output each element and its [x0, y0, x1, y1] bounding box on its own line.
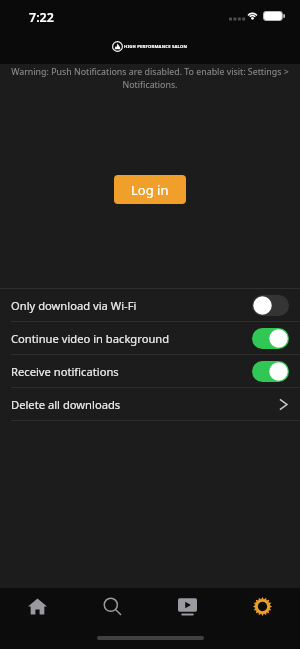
staticText: Log in — [131, 181, 169, 199]
staticText: Delete all downloads — [11, 397, 121, 412]
staticText: Receive notifications — [11, 364, 119, 379]
button[interactable]: Delete all downloads — [0, 388, 300, 420]
button[interactable]: Settings — [225, 586, 300, 626]
staticText: Continue video in background — [11, 331, 170, 346]
staticText: Warning: Push Notifications are disabled… — [9, 66, 291, 91]
button[interactable]: Continue video in background — [0, 322, 300, 354]
button[interactable]: Videos — [150, 586, 225, 626]
staticText: HIGH PERFORMANCE SALON — [124, 44, 188, 50]
button[interactable]: Receive notifications — [0, 355, 300, 387]
button[interactable]: Home — [0, 586, 75, 626]
button[interactable]: Only download via Wi-Fi — [0, 289, 300, 321]
button[interactable]: Search — [75, 586, 150, 626]
staticText: 7:22 — [29, 9, 54, 26]
staticText: Only download via Wi-Fi — [11, 298, 137, 313]
button[interactable]: Log in — [114, 175, 186, 204]
